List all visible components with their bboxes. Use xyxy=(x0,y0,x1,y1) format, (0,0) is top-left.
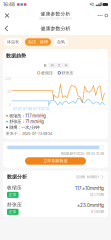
staticText: 117±10mmHg xyxy=(75,186,104,191)
button[interactable]: Close xyxy=(2,10,12,20)
button[interactable]: 日 xyxy=(41,63,48,68)
staticText: 正常 xyxy=(9,192,17,197)
staticText: 标准统计 xyxy=(87,175,99,179)
staticText: 4G xyxy=(89,2,94,7)
staticText: ±23.0mmHg xyxy=(77,203,104,208)
staticText: 数据分析 xyxy=(7,173,27,180)
staticText: 16:48 xyxy=(3,2,15,7)
staticText: 舒张压 xyxy=(7,202,22,208)
staticText: 健康参数分析 xyxy=(40,11,70,17)
button[interactable]: 舒张压 xyxy=(3,200,108,217)
staticText: 舒张压：71 mmHg xyxy=(9,119,44,124)
button[interactable]: More options xyxy=(95,12,109,19)
button[interactable]: Back xyxy=(2,23,12,34)
staticText: 更新于：2025-07-13 09:54 xyxy=(6,131,52,136)
button[interactable]: 血氧 xyxy=(54,38,68,46)
staticText: 12.1.7次数 xyxy=(90,192,104,197)
staticText: 0 xyxy=(9,103,11,107)
staticText: 血压、脉搏 xyxy=(28,39,48,44)
staticText: 健康参数分析 xyxy=(40,25,70,32)
staticText: 07-07 07-09 07-11 07-13 xyxy=(13,107,49,111)
button[interactable]: 体温表 xyxy=(4,38,22,46)
staticText: 周 xyxy=(50,63,53,67)
staticText: 收缩压 xyxy=(7,185,22,191)
staticText: 收缩压 xyxy=(41,70,53,75)
staticText: xxxgm.buzidianz.com.cn xyxy=(39,17,72,20)
button[interactable]: 年 xyxy=(62,63,69,68)
staticText: 正常 xyxy=(9,209,17,214)
staticText: 立即刷新数据 xyxy=(43,158,67,163)
button[interactable]: 收缩压 xyxy=(3,183,108,200)
button[interactable]: 总次数 xyxy=(76,174,104,179)
staticText: 日 xyxy=(43,63,46,67)
staticText: 月 xyxy=(57,63,60,67)
staticText: 体温表 xyxy=(7,39,19,44)
staticText: 收缩压：117 mmHg xyxy=(9,113,46,118)
staticText: 220 xyxy=(5,77,11,81)
staticText: 数据趋势 xyxy=(6,52,26,59)
staticText: 年 xyxy=(64,63,67,67)
staticText: 110 xyxy=(7,90,11,94)
button[interactable]: 周 xyxy=(48,63,55,68)
button[interactable]: 立即刷新数据 xyxy=(25,157,86,165)
button[interactable]: 月 xyxy=(55,63,62,68)
staticText: 血氧 xyxy=(57,39,65,44)
button[interactable]: 血压、脉搏 xyxy=(25,38,51,46)
staticText: 舒张压 xyxy=(62,70,74,75)
staticText: 总次数 xyxy=(76,175,85,179)
staticText: 脉搏：一次/分钟 xyxy=(9,125,39,130)
staticText: 数据刷新于2025-09-25 12:48 xyxy=(61,151,104,156)
staticText: 6.1.0次数 xyxy=(91,209,104,214)
